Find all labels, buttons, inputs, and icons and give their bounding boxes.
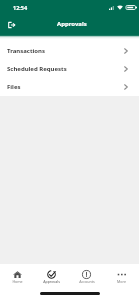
- button[interactable]: Approvals: [34, 264, 69, 294]
- staticText: Home: [12, 279, 23, 284]
- staticText: Transactions: [7, 47, 45, 55]
- staticText: Approvals: [57, 20, 87, 28]
- staticText: Approvals: [43, 279, 60, 284]
- button[interactable]: Home: [0, 264, 34, 294]
- button[interactable]: Accounts: [69, 264, 104, 294]
- button[interactable]: Transactions: [0, 42, 139, 60]
- button[interactable]: Files: [0, 78, 139, 96]
- staticText: Accounts: [79, 279, 95, 284]
- staticText: More: [117, 279, 126, 284]
- staticText: 12:54: [13, 4, 28, 11]
- staticText: Files: [7, 83, 21, 91]
- button[interactable]: Scheduled Requests: [0, 60, 139, 78]
- staticText: Scheduled Requests: [7, 65, 67, 73]
- button[interactable]: Log out: [4, 17, 19, 32]
- button[interactable]: More: [104, 264, 139, 294]
